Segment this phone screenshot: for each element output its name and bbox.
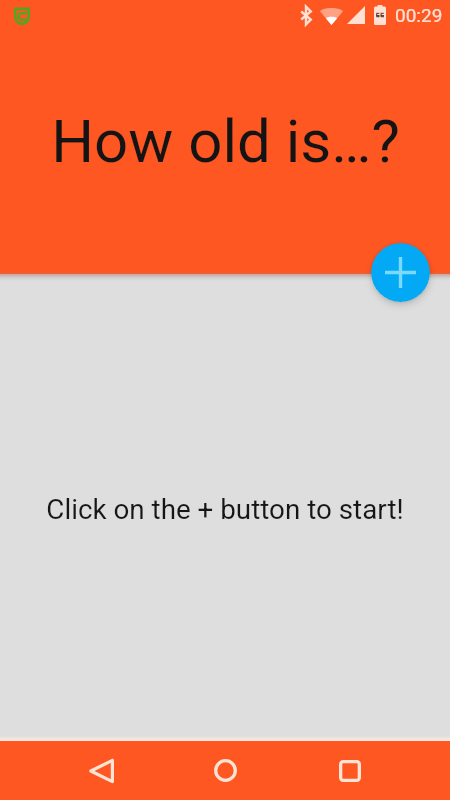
button[interactable]: Add person: [371, 243, 430, 302]
button[interactable]: Home: [193, 741, 257, 800]
staticText: 00:29: [395, 4, 443, 26]
button[interactable]: Back: [69, 741, 133, 800]
button[interactable]: Recent apps: [318, 741, 382, 800]
staticText: Click on the + button to start!: [46, 493, 404, 526]
staticText: How old is…?: [51, 106, 400, 176]
